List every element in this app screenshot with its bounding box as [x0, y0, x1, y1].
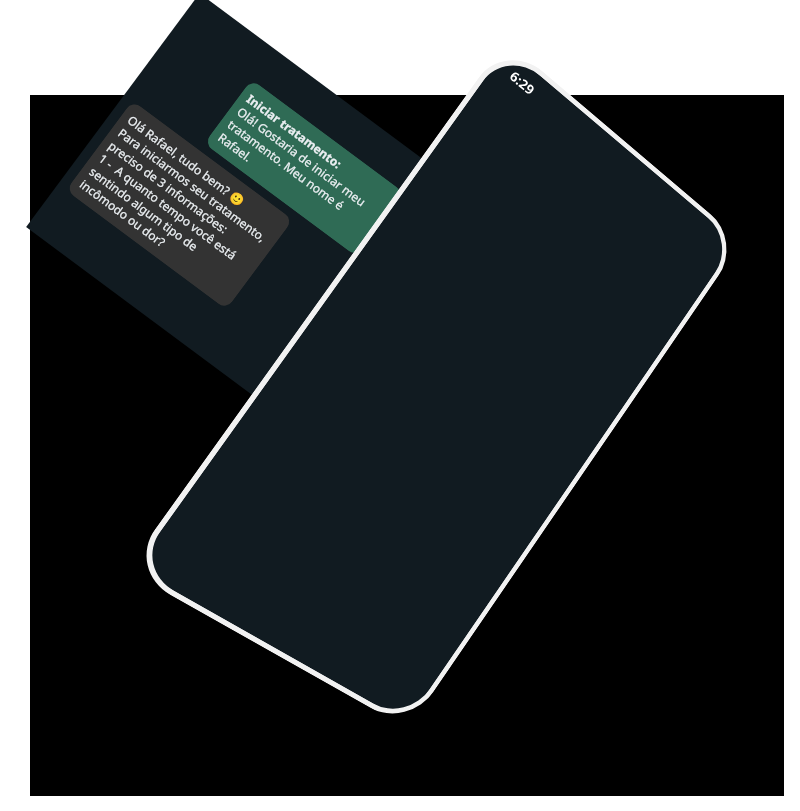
staticText: Iniciar tratamento:: [244, 90, 346, 172]
staticText: 6:29: [506, 67, 538, 99]
staticText: Olá! Gostaria de iniciar meu tratamento.…: [215, 103, 383, 246]
staticText: Para iniciarmos seu tratamento, preciso …: [106, 124, 272, 260]
staticText: 1 - A quanto tempo você está sentindo al…: [77, 150, 253, 298]
staticText: Olá Rafael, tudo bem? 🙂: [125, 112, 248, 209]
